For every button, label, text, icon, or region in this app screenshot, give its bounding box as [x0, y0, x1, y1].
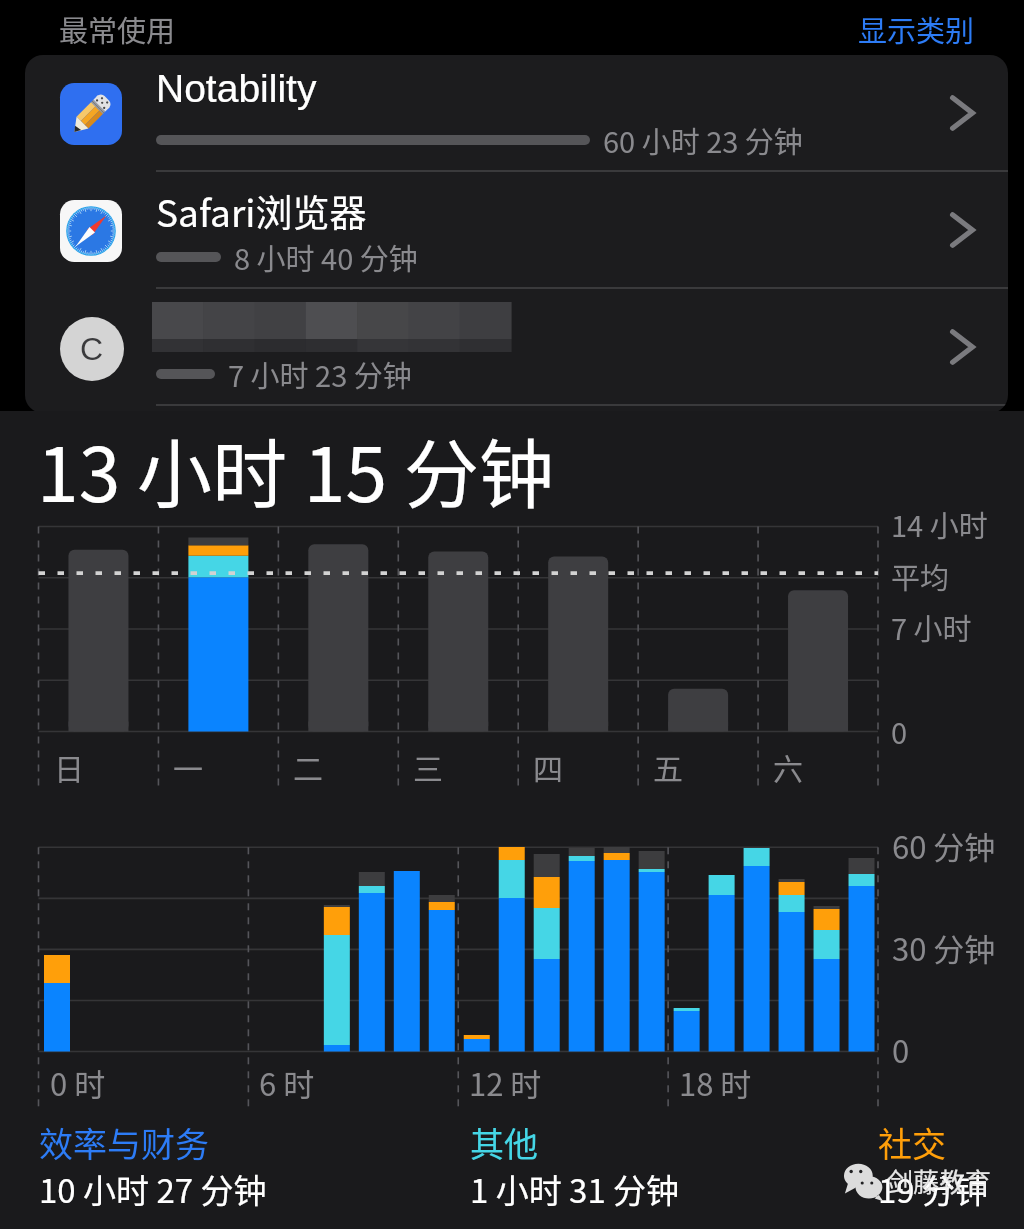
staticText: 四 [533, 745, 563, 788]
staticText: 10 小时 27 分钟 [39, 1165, 267, 1213]
staticText: 显示类别 [858, 8, 975, 50]
staticText: 社交 [878, 1118, 946, 1167]
staticText: 14 小时 [891, 503, 988, 545]
staticText: 0 [891, 710, 908, 752]
staticText: 效率与财务 [39, 1118, 209, 1167]
staticText: 13 小时 15 分钟 [37, 415, 554, 524]
staticText: 其他 [470, 1118, 538, 1167]
staticText: 8 小时 40 分钟 [234, 236, 418, 278]
staticText: 0 时 [50, 1060, 106, 1105]
staticText: 6 时 [259, 1060, 315, 1105]
other: Show details [950, 328, 976, 366]
staticText: 一 [173, 745, 203, 788]
staticText: 30 分钟 [892, 925, 996, 970]
other: Show details [950, 94, 976, 132]
staticText: 19 分钟 [878, 1165, 989, 1213]
staticText: 1 小时 31 分钟 [470, 1165, 680, 1213]
button[interactable]: Notability [25, 55, 1008, 172]
staticText: Safari浏览器 [156, 184, 367, 238]
staticText: 平均 [891, 555, 950, 597]
button[interactable]: 显示类别 [858, 8, 975, 50]
staticText: 二 [293, 745, 323, 788]
staticText: 0 [892, 1027, 910, 1072]
staticText: 7 小时 [891, 606, 972, 648]
staticText: 7 小时 23 分钟 [228, 353, 412, 395]
staticText: 12 时 [469, 1060, 542, 1105]
staticText: 五 [653, 745, 683, 788]
staticText: 18 时 [679, 1060, 752, 1105]
staticText: C [80, 331, 104, 367]
staticText: 六 [773, 745, 803, 788]
button[interactable]: Safari浏览器 [25, 172, 1008, 289]
other: Show details [950, 211, 976, 249]
staticText: 60 分钟 [892, 823, 996, 868]
button[interactable]: C [25, 289, 1008, 406]
staticText: 剑藤教育 [887, 1162, 992, 1200]
staticText: 日 [54, 745, 84, 788]
button[interactable]: 最常使用 [59, 8, 176, 50]
staticText: 最常使用 [59, 8, 176, 50]
staticText: 60 小时 23 分钟 [603, 119, 803, 161]
staticText: Notability [156, 67, 317, 111]
staticText: 三 [413, 745, 443, 788]
